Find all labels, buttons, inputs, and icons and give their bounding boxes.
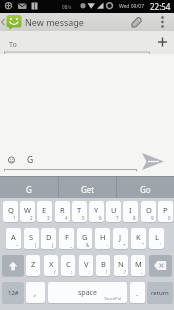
staticText: B [101,259,106,269]
staticText: 22:54 [150,1,171,12]
staticText: 9 [151,215,154,221]
staticText: To [9,40,17,50]
staticText: 5 [82,215,85,221]
button[interactable]: space [48,282,127,303]
staticText: 6 [99,215,102,221]
button[interactable]: J [113,228,128,249]
button[interactable]: R [55,201,70,222]
button[interactable] [149,255,172,276]
staticText: Z [31,259,36,269]
staticText: ` [36,269,38,275]
staticText: 4 [65,215,68,221]
staticText: return [151,289,169,297]
staticText: A [11,232,16,242]
button[interactable]: Go [117,177,174,198]
staticText: U [111,205,117,215]
staticText: 8 [133,215,136,221]
button[interactable]: H [95,228,110,249]
button[interactable]: Y [89,201,104,222]
button[interactable]: U [106,201,121,222]
staticText: . [136,287,139,298]
button[interactable]: G [0,177,58,198]
button[interactable] [2,255,24,276]
staticText: 0B/s [62,4,72,10]
button[interactable]: F [59,228,74,249]
button[interactable]: G [77,228,92,249]
button[interactable]: return [147,282,173,303]
staticText: 3 [47,215,50,221]
staticText: V [84,259,89,269]
staticText: New message [25,16,84,28]
button[interactable]: W [20,201,35,222]
button[interactable] [154,13,170,31]
button[interactable]: Get [59,177,116,198]
button[interactable] [124,13,148,31]
button[interactable]: 12# [2,282,24,303]
staticText: E [42,205,47,215]
staticText: I [129,205,132,215]
staticText: ) [52,242,54,248]
staticText: P [163,205,168,215]
button[interactable]: X [44,255,58,276]
staticText: : [89,269,91,275]
button[interactable]: C [61,255,75,276]
button[interactable]: L [149,228,164,249]
staticText: N [118,259,124,269]
staticText: W [24,205,31,215]
button[interactable]: I [123,201,138,222]
staticText: 0 [168,215,171,221]
staticText: & [86,242,90,248]
button[interactable]: Q [3,201,18,222]
staticText: Wed 09/07 [119,3,145,10]
button[interactable]: A [6,228,21,249]
staticText: space [78,288,97,298]
staticText: 1 [13,215,16,221]
button[interactable]: E [37,201,52,222]
button[interactable]: M [131,255,145,276]
staticText: Go [140,184,151,195]
staticText: Get [81,184,95,195]
staticText: J [119,232,122,242]
button[interactable]: O [141,201,156,222]
staticText: / [54,269,56,275]
staticText: ; [71,269,73,275]
button[interactable]: Z [26,255,40,276]
button[interactable]: N [114,255,128,276]
staticText: G [82,232,88,242]
staticText: X [49,259,54,269]
button[interactable]: P [158,201,173,222]
staticText: ' [160,242,162,248]
staticText: TouchPal [104,296,121,301]
button[interactable]: K [131,228,146,249]
button[interactable]: T [72,201,87,222]
button[interactable]: . [130,282,145,303]
button[interactable]: V [79,255,93,276]
staticText: R [60,205,65,215]
staticText: + [123,242,126,248]
button[interactable]: , [26,282,45,303]
button[interactable]: D [41,228,56,249]
staticText: " [142,242,144,248]
staticText: ( [35,242,37,248]
staticText: S [29,232,34,242]
staticText: _ [70,242,72,248]
staticText: F [65,232,69,242]
button[interactable] [140,150,174,176]
staticText: 12# [8,289,19,297]
staticText: K [136,232,141,242]
staticText: , [141,269,143,275]
staticText: ! [106,269,108,275]
button[interactable] [150,31,174,54]
staticText: ~ [16,242,19,248]
button[interactable]: B [96,255,110,276]
staticText: Y [94,205,99,215]
staticText: O [146,205,152,215]
staticText: 7 [116,215,119,221]
button[interactable] [6,14,22,30]
staticText: H [100,232,106,242]
staticText: L [155,232,159,242]
staticText: ? [124,269,126,275]
staticText: , [34,287,37,298]
button[interactable]: S [24,228,39,249]
staticText: Q [8,205,14,215]
